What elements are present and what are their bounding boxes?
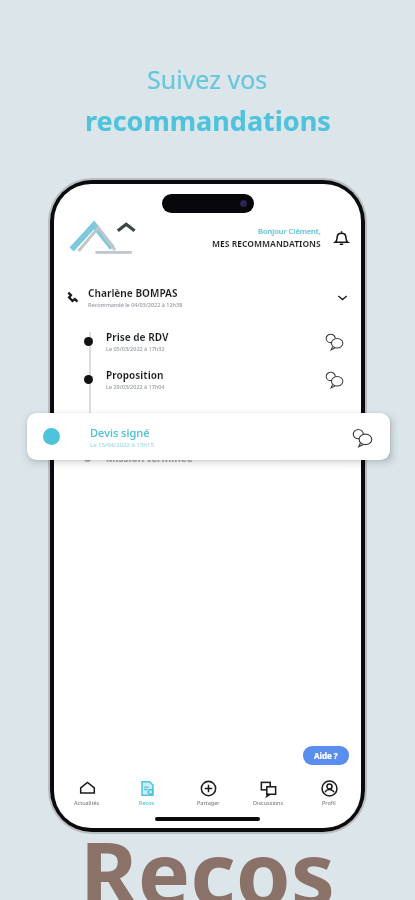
staticText: Profil	[322, 799, 336, 806]
staticText: Discussions	[253, 799, 284, 806]
button[interactable]: Profil	[301, 780, 357, 806]
staticText: Mission terminée	[106, 451, 193, 465]
button[interactable]	[62, 216, 140, 260]
button[interactable]: Proposition	[54, 360, 361, 398]
staticText: Devis signé	[90, 425, 150, 440]
button[interactable]: Aide ?	[303, 746, 349, 765]
staticText: Le 15/04/2022 à 15h15	[90, 441, 154, 449]
staticText: Prise de RDV	[106, 330, 169, 344]
staticText: MES RECOMMANDATIONS	[212, 238, 321, 250]
staticText: recommandations	[85, 102, 331, 139]
staticText: Recommandé le 04/03/2022 à 12h38	[88, 301, 183, 308]
staticText: Aide ?	[314, 750, 338, 761]
staticText: Recos	[80, 812, 335, 900]
button[interactable]: Discussion devis signé	[350, 425, 374, 449]
button[interactable]: Charlène BOMPAS	[54, 280, 361, 314]
staticText: Le 29/03/2022 à 17h04	[106, 383, 165, 390]
staticText: Proposition	[106, 368, 164, 382]
staticText: Le 05/03/2022 à 17h32	[106, 345, 165, 352]
button[interactable]: Partager	[180, 780, 236, 806]
button[interactable]: Prise de RDV	[54, 322, 361, 360]
staticText: Bonjour Clément,	[258, 226, 321, 236]
staticText: Partager	[197, 799, 220, 806]
button[interactable]: Devis signé	[27, 413, 390, 460]
staticText: Recos	[139, 799, 155, 806]
button[interactable]: Discussion	[323, 368, 345, 390]
staticText: Charlène BOMPAS	[88, 286, 178, 300]
button[interactable]: Discussion	[323, 330, 345, 352]
staticText: Suivez vos	[147, 62, 268, 96]
button[interactable]: Notifications	[329, 226, 353, 250]
button[interactable]: Discussions	[240, 780, 296, 806]
button[interactable]: Recos	[119, 780, 175, 806]
button[interactable]: Mission terminée	[54, 444, 361, 472]
staticText: Actualités	[74, 799, 100, 806]
button[interactable]: Actualités	[59, 780, 115, 806]
